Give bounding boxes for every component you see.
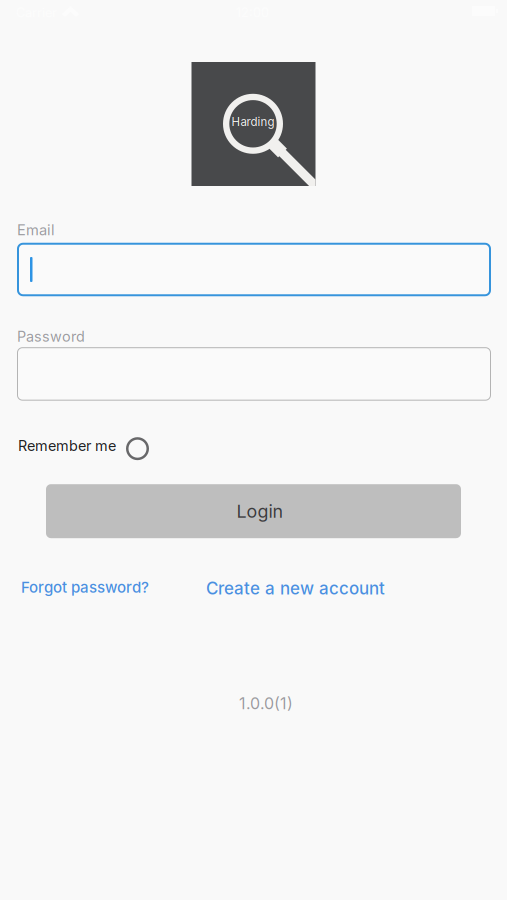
staticText: Harding (231, 115, 274, 129)
staticText: Login (236, 500, 283, 522)
staticText: Remember me (18, 437, 116, 454)
staticText: 1.0.0(1) (239, 694, 293, 713)
staticText: Password (17, 328, 85, 345)
staticText: Forgot password? (21, 578, 149, 596)
button[interactable]: Login (0, 484, 461, 538)
button[interactable]: Forgot password? (0, 578, 149, 596)
button[interactable]: Create a new account (206, 578, 385, 599)
staticText: Email (17, 221, 55, 239)
button[interactable]: Remember me (0, 434, 149, 457)
staticText: Create a new account (206, 578, 385, 599)
